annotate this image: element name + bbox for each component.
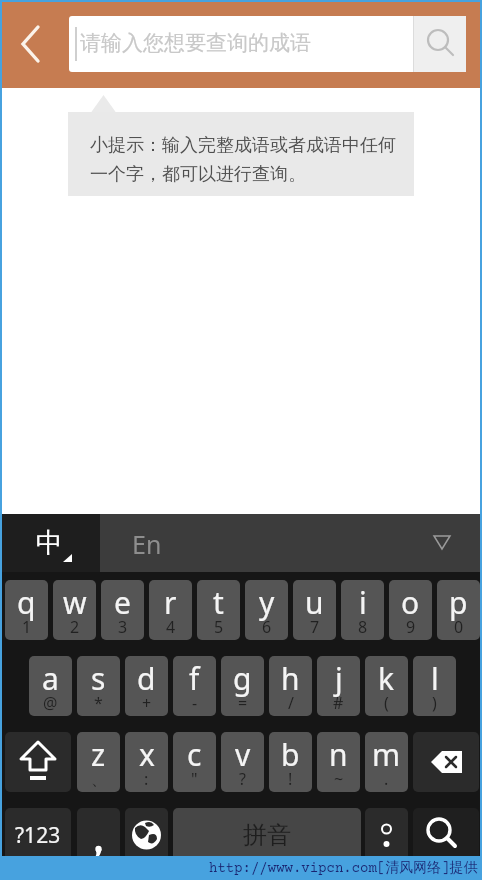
button[interactable]: f <box>173 656 216 716</box>
staticText: ?123 <box>15 821 61 850</box>
button[interactable] <box>5 732 71 792</box>
staticText: @ <box>43 692 58 714</box>
staticText: z <box>91 734 106 775</box>
button[interactable]: i <box>341 580 384 640</box>
staticText: + <box>142 692 152 714</box>
staticText: * <box>94 692 103 714</box>
button[interactable] <box>69 16 466 72</box>
staticText: h <box>281 658 300 699</box>
button[interactable]: r <box>149 580 192 640</box>
staticText: w <box>63 582 87 623</box>
staticText: b <box>281 734 300 775</box>
button[interactable] <box>413 808 479 868</box>
button[interactable]: m <box>365 732 408 792</box>
staticText: 8 <box>358 616 368 638</box>
staticText: k <box>378 658 395 699</box>
staticText: ? <box>239 768 246 790</box>
button[interactable]: w <box>53 580 96 640</box>
staticText: c <box>187 734 202 775</box>
staticText: 拼音 <box>243 820 291 850</box>
staticText: j <box>335 658 343 699</box>
button[interactable]: c <box>173 732 216 792</box>
staticText: n <box>329 734 348 775</box>
staticText: 9 <box>406 616 416 638</box>
staticText: = <box>238 692 248 714</box>
staticText: l <box>431 658 439 699</box>
staticText: a <box>42 658 59 699</box>
button[interactable] <box>125 808 168 868</box>
button[interactable]: p <box>437 580 480 640</box>
staticText: i <box>359 582 367 623</box>
button[interactable]: j <box>317 656 360 716</box>
button[interactable]: t <box>197 580 240 640</box>
button[interactable]: x <box>125 732 168 792</box>
button[interactable] <box>413 16 466 72</box>
button[interactable]: o <box>389 580 432 640</box>
staticText: 请输入您想要查询的成语 <box>80 30 311 56</box>
staticText: 3 <box>118 616 128 638</box>
button[interactable]: d <box>125 656 168 716</box>
staticText: s <box>91 658 106 699</box>
button[interactable]: b <box>269 732 312 792</box>
button[interactable]: g <box>221 656 264 716</box>
staticText: " <box>191 768 198 790</box>
button[interactable]: h <box>269 656 312 716</box>
button[interactable]: u <box>293 580 336 640</box>
staticText: y <box>259 582 275 623</box>
button[interactable]: l <box>413 656 456 716</box>
staticText: x <box>139 734 155 775</box>
staticText: 4 <box>166 616 176 638</box>
staticText: o <box>401 582 420 623</box>
staticText: 一个字，都可以进行查询。 <box>90 163 306 186</box>
staticText: 0 <box>454 616 464 638</box>
staticText: v <box>235 734 251 775</box>
staticText: 、 <box>91 770 107 790</box>
button[interactable]: z <box>77 732 120 792</box>
staticText: ) <box>432 692 437 714</box>
staticText: 7 <box>310 616 320 638</box>
button[interactable] <box>365 808 408 868</box>
staticText: ~ <box>334 768 344 790</box>
button[interactable]: s <box>77 656 120 716</box>
staticText: 1 <box>22 616 32 638</box>
button[interactable]: ?123 <box>5 808 71 868</box>
staticText: ! <box>288 768 293 790</box>
staticText: p <box>449 582 468 623</box>
button[interactable]: e <box>101 580 144 640</box>
staticText: / <box>288 692 294 714</box>
button[interactable]: a <box>29 656 72 716</box>
staticText: q <box>17 582 36 623</box>
button[interactable]: 拼音 <box>173 808 361 868</box>
button[interactable]: n <box>317 732 360 792</box>
staticText: - <box>192 692 198 714</box>
staticText: http://www.vipcn.com[清风网络]提供 <box>209 859 478 877</box>
staticText: u <box>305 582 324 623</box>
button[interactable]: k <box>365 656 408 716</box>
staticText: t <box>213 582 224 623</box>
staticText: . <box>384 768 389 790</box>
staticText: # <box>333 692 344 714</box>
staticText: 5 <box>214 616 224 638</box>
staticText: f <box>189 658 200 699</box>
button[interactable]: En <box>120 514 180 572</box>
staticText: e <box>114 582 131 623</box>
button[interactable] <box>10 22 50 66</box>
staticText: d <box>137 658 156 699</box>
button[interactable]: 中 <box>0 514 100 572</box>
button[interactable]: q <box>5 580 48 640</box>
button[interactable] <box>413 732 479 792</box>
staticText: 6 <box>262 616 272 638</box>
staticText: ( <box>384 692 389 714</box>
staticText: 中 <box>36 526 63 560</box>
staticText: g <box>233 658 252 699</box>
staticText: : <box>144 768 149 790</box>
button[interactable] <box>77 808 120 868</box>
staticText: En <box>132 527 162 561</box>
staticText: r <box>164 582 177 623</box>
staticText: 2 <box>70 616 80 638</box>
staticText: 小提示：输入完整成语或者成语中任何 <box>90 134 396 157</box>
button[interactable]: y <box>245 580 288 640</box>
button[interactable]: v <box>221 732 264 792</box>
staticText: m <box>372 734 401 775</box>
